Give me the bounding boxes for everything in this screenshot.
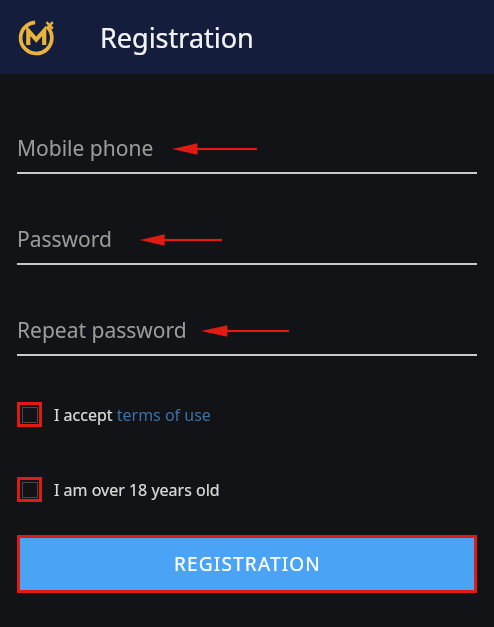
- staticText: Registration: [100, 19, 254, 56]
- staticText: Password: [17, 225, 112, 254]
- staticText: I am over 18 years old: [54, 479, 220, 501]
- staticText: Mobile phone: [17, 134, 154, 163]
- staticText: I accept terms of use: [54, 404, 211, 426]
- button[interactable]: REGISTRATION: [20, 538, 474, 590]
- button[interactable]: Password: [17, 225, 477, 265]
- button[interactable]: I am over 18 years old checkbox: [17, 477, 220, 502]
- other: Accept terms of use checkbox: [17, 402, 42, 427]
- button[interactable]: Accept terms of use checkbox: [17, 402, 211, 427]
- staticText: Repeat password: [17, 316, 187, 345]
- button[interactable]: App logo: [16, 15, 60, 59]
- button[interactable]: Repeat password: [17, 316, 477, 356]
- other: I am over 18 years old checkbox: [17, 477, 42, 502]
- staticText: REGISTRATION: [174, 551, 321, 577]
- button[interactable]: Mobile phone: [17, 134, 477, 174]
